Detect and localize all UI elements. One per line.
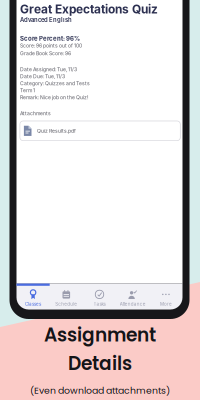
staticText: Details <box>68 350 132 376</box>
button[interactable]: More <box>149 290 182 309</box>
staticText: More <box>160 301 172 307</box>
staticText: Score Percent: 96% <box>20 35 80 42</box>
staticText: Classes <box>25 301 41 307</box>
staticText: Attachments <box>20 110 51 116</box>
staticText: Advanced English <box>20 16 72 23</box>
staticText: Attendance <box>120 301 146 307</box>
staticText: Assignment <box>44 322 156 348</box>
staticText: Score: 96 points out of 100 <box>20 42 82 49</box>
staticText: Date Assigned: Tue, 11/3 <box>20 66 77 72</box>
staticText: Remark: Nice job on the Quiz! <box>20 94 88 100</box>
button[interactable]: Attendance <box>116 290 149 309</box>
button[interactable]: Quiz Results.pdf <box>20 121 180 141</box>
button[interactable]: Schedule <box>50 290 83 309</box>
staticText: Term 1 <box>20 87 35 93</box>
staticText: Schedule <box>55 301 77 307</box>
button[interactable]: Tasks <box>83 290 116 309</box>
staticText: Tasks <box>93 301 105 307</box>
staticText: Date Due: Tue, 11/3 <box>20 73 65 79</box>
staticText: Category: Quizzes and Tests <box>20 80 90 86</box>
staticText: (Even download attachments) <box>30 384 170 397</box>
staticText: Grade Book Score: 96 <box>20 50 71 56</box>
staticText: Quiz Results.pdf <box>37 128 76 134</box>
staticText: Great Expectations Quiz <box>20 2 158 16</box>
button[interactable]: Classes <box>16 290 50 309</box>
